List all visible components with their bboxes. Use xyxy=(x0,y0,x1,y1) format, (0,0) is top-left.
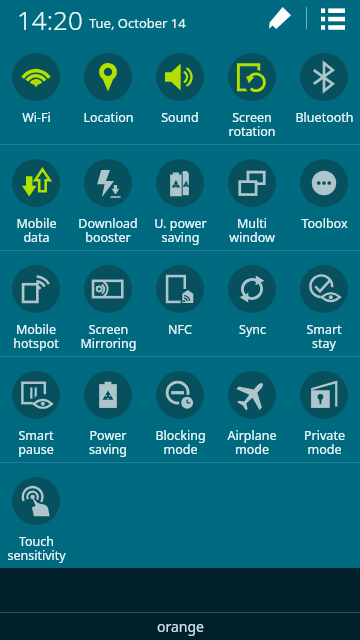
staticText: Location xyxy=(83,109,134,126)
staticText: Airplane mode xyxy=(227,427,277,458)
staticText: Multi window xyxy=(229,215,275,246)
button[interactable]: Mobile hotspot xyxy=(0,250,72,356)
staticText: Bluetooth xyxy=(295,109,354,126)
staticText: Tue, October 14 xyxy=(89,14,186,32)
staticText: NFC xyxy=(168,321,192,338)
staticText: Screen Mirroring xyxy=(80,321,137,352)
staticText: Mobile data xyxy=(16,215,57,246)
button[interactable]: Download booster xyxy=(72,144,144,250)
button[interactable]: Screen rotation xyxy=(216,38,288,144)
button[interactable]: Mobile data xyxy=(0,144,72,250)
button[interactable]: Private mode xyxy=(288,356,360,462)
staticText: Download booster xyxy=(78,215,138,246)
staticText: Touch sensitivity xyxy=(7,533,66,564)
button[interactable]: Power saving xyxy=(72,356,144,462)
staticText: Private mode xyxy=(304,427,345,458)
button[interactable]: Airplane mode xyxy=(216,356,288,462)
button[interactable]: U. power saving xyxy=(144,144,216,250)
button[interactable]: Edit quick settings xyxy=(263,1,297,35)
staticText: Screen rotation xyxy=(228,109,276,140)
staticText: Toolbox xyxy=(301,215,348,232)
staticText: Mobile hotspot xyxy=(13,321,59,352)
button[interactable]: Wi-Fi xyxy=(0,38,72,144)
staticText: Blocking mode xyxy=(155,427,206,458)
staticText: Wi-Fi xyxy=(22,109,51,126)
staticText: orange xyxy=(157,617,204,636)
button[interactable]: Blocking mode xyxy=(144,356,216,462)
button[interactable]: Toolbox xyxy=(288,144,360,250)
staticText: U. power saving xyxy=(154,215,207,246)
button[interactable]: Smart pause xyxy=(0,356,72,462)
button[interactable]: NFC xyxy=(144,250,216,356)
button[interactable]: Touch sensitivity xyxy=(0,462,72,568)
button[interactable]: Sound xyxy=(144,38,216,144)
staticText: Power saving xyxy=(89,427,127,458)
button[interactable]: Multi window xyxy=(216,144,288,250)
button[interactable]: Smart stay xyxy=(288,250,360,356)
button[interactable]: Screen Mirroring xyxy=(72,250,144,356)
staticText: Sync xyxy=(239,321,266,338)
button[interactable]: Notification list xyxy=(316,1,350,35)
staticText: Smart pause xyxy=(18,427,54,458)
staticText: 14:20 xyxy=(17,2,83,37)
button[interactable]: Sync xyxy=(216,250,288,356)
staticText: Sound xyxy=(161,109,199,126)
staticText: Smart stay xyxy=(306,321,342,352)
button[interactable]: Bluetooth xyxy=(288,38,360,144)
button[interactable]: Location xyxy=(72,38,144,144)
